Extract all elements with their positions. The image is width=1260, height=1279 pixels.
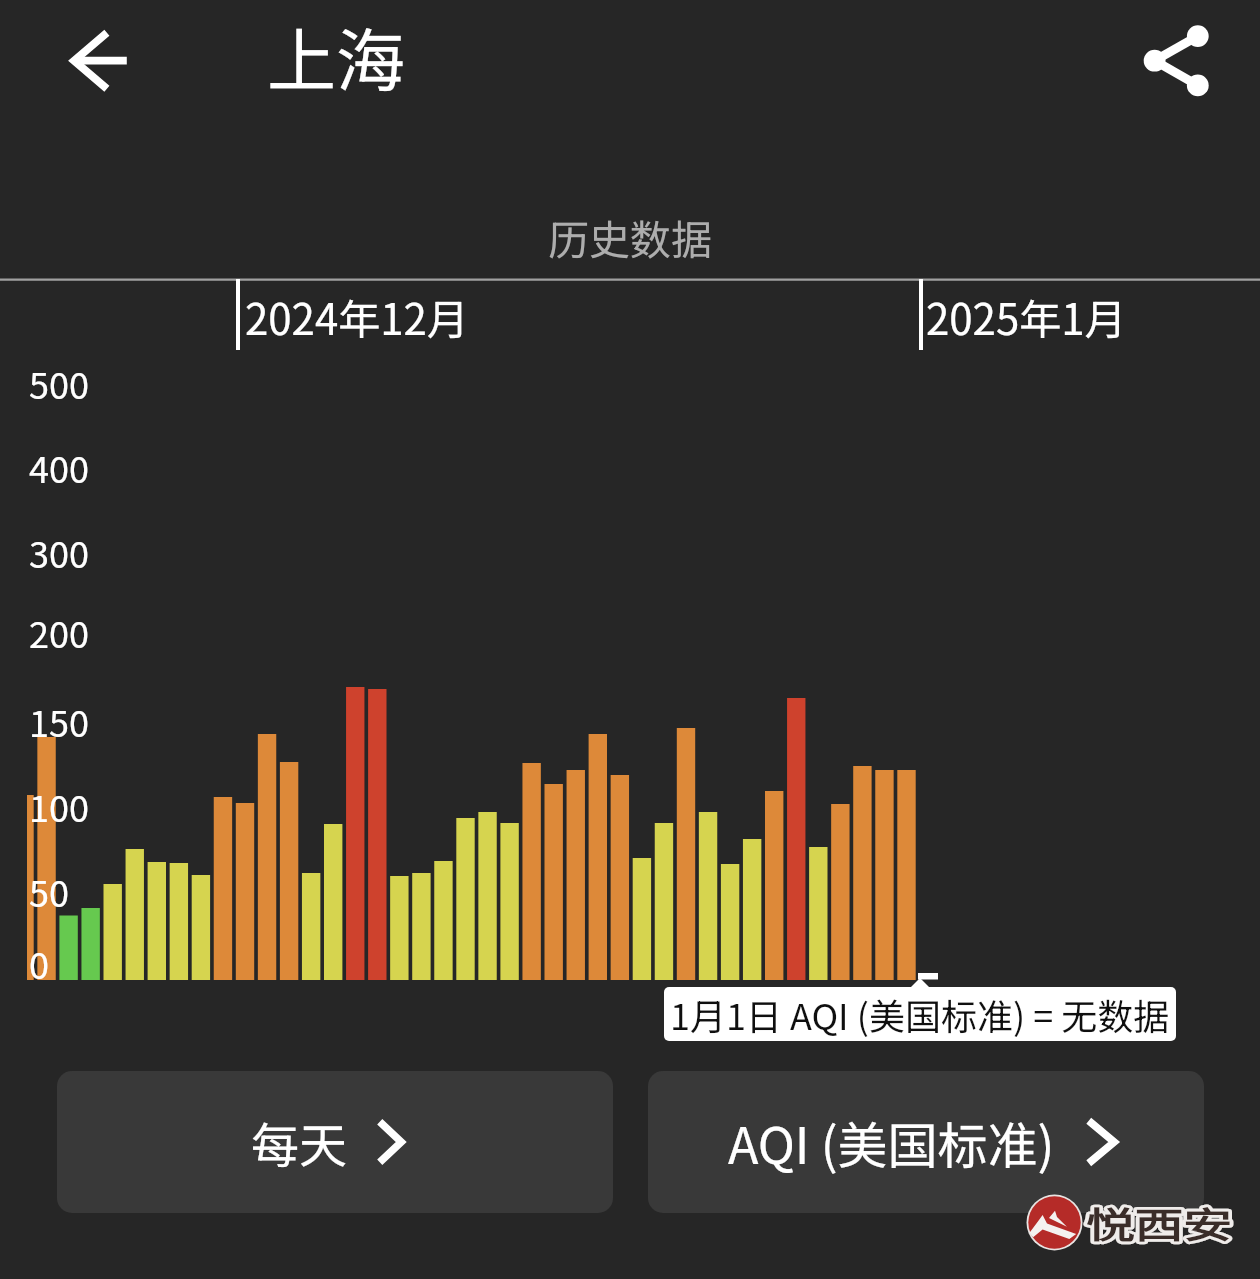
staticText: AQI (美国标准) xyxy=(728,1106,1055,1178)
staticText: 悦西安 xyxy=(1086,1197,1232,1249)
staticText: 历史数据 xyxy=(0,207,1260,266)
staticText: 150 xyxy=(29,695,89,747)
staticText: 悦西安 xyxy=(1086,1197,1232,1249)
staticText: 每天 xyxy=(251,1107,348,1177)
staticText: 300 xyxy=(29,526,89,578)
staticText: 100 xyxy=(29,780,89,832)
staticText: 上海 xyxy=(267,6,405,106)
staticText: 0 xyxy=(29,937,49,989)
button[interactable]: AQI (美国标准) xyxy=(648,1071,1204,1213)
staticText: 50 xyxy=(29,865,69,917)
staticText: 2024年12月 xyxy=(245,286,469,347)
staticText: 500 xyxy=(29,357,89,409)
staticText: 200 xyxy=(29,606,89,658)
button[interactable]: Share xyxy=(1137,21,1217,101)
button[interactable]: 每天 xyxy=(57,1071,613,1213)
staticText: 400 xyxy=(29,441,89,493)
staticText: 1月1日 AQI (美国标准) = 无数据 xyxy=(670,988,1170,1040)
staticText: 2025年1月 xyxy=(926,286,1127,347)
button[interactable]: Back xyxy=(62,21,142,101)
